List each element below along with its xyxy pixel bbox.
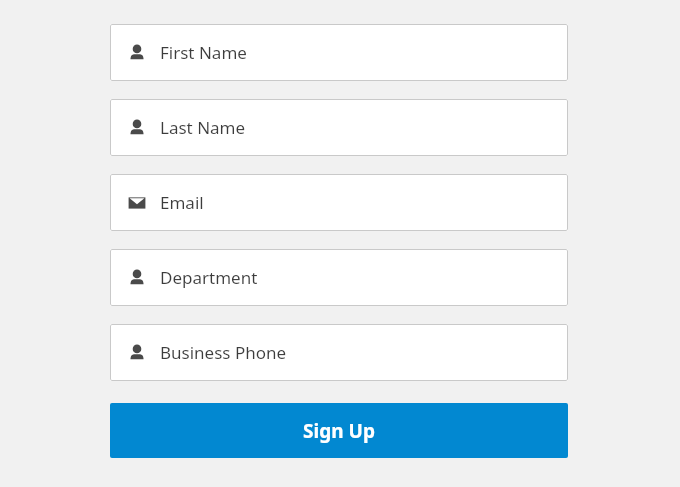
staticText: Business Phone [160,341,287,364]
button[interactable]: Email [110,174,568,231]
staticText: Sign Up [303,418,375,444]
staticText: Department [160,266,258,289]
button[interactable]: Sign Up [110,403,568,458]
staticText: First Name [160,41,247,64]
button[interactable]: First Name [110,24,568,81]
button[interactable]: Department [110,249,568,306]
staticText: Email [160,191,204,214]
button[interactable]: Business Phone [110,324,568,381]
staticText: Last Name [160,116,246,139]
button[interactable]: Last Name [110,99,568,156]
